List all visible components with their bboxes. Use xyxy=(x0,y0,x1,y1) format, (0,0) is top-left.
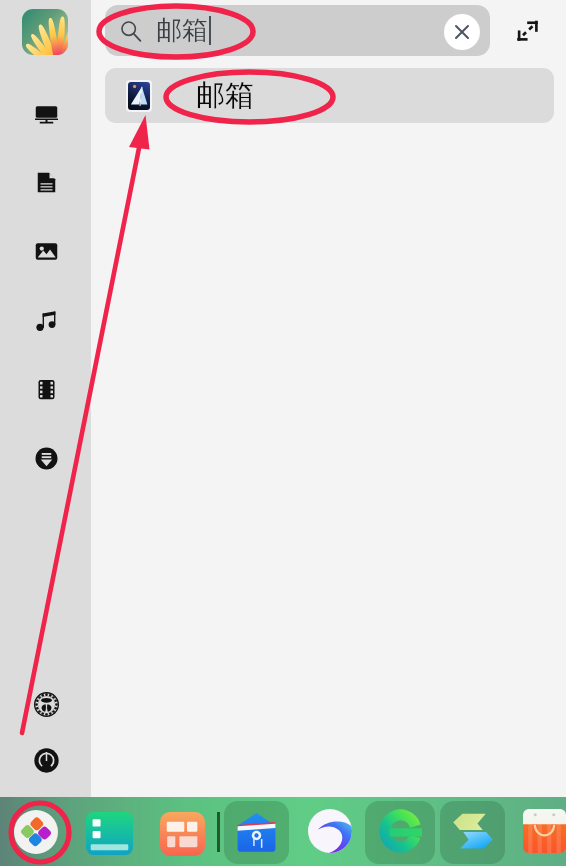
button[interactable]: App store xyxy=(523,809,566,853)
button[interactable]: Music xyxy=(28,302,64,338)
button[interactable]: Edge xyxy=(379,809,422,853)
button[interactable]: Settings xyxy=(28,686,64,722)
button[interactable]: Videos xyxy=(28,371,64,407)
button[interactable]: Files xyxy=(86,812,133,855)
button[interactable]: 邮箱 xyxy=(105,5,490,56)
button[interactable]: Security xyxy=(235,810,278,854)
button[interactable]: Clear search xyxy=(444,14,480,50)
button[interactable]: Apps xyxy=(160,812,205,856)
button[interactable]: Power xyxy=(28,742,64,778)
button[interactable]: Documents xyxy=(28,164,64,200)
button[interactable]: Browser xyxy=(308,809,352,853)
staticText: 邮箱 xyxy=(196,77,254,114)
button[interactable]: Start menu xyxy=(14,810,58,854)
button[interactable]: 邮箱 xyxy=(105,68,554,123)
button[interactable]: Screenshot xyxy=(451,809,495,853)
button[interactable]: Downloads xyxy=(28,440,64,476)
button[interactable]: Profile xyxy=(22,9,68,55)
button[interactable]: Expand xyxy=(510,13,544,47)
button[interactable]: Desktop xyxy=(28,95,64,131)
staticText: 邮箱 xyxy=(156,14,208,47)
button[interactable]: Pictures xyxy=(28,233,64,269)
